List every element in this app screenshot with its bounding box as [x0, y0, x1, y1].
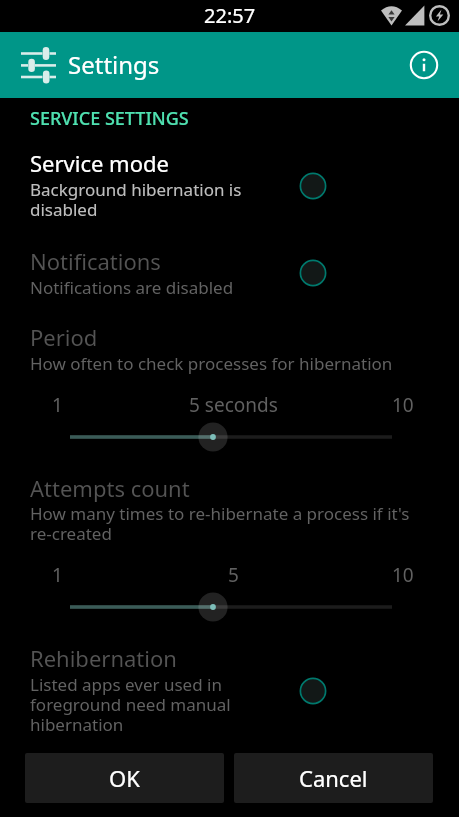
staticText: Rehibernation: [30, 643, 177, 673]
staticText: Background hibernation is disabled: [30, 178, 242, 221]
staticText: Listed apps ever used in foreground need…: [30, 673, 231, 736]
staticText: Attempts count: [30, 473, 190, 503]
staticText: OK: [109, 763, 140, 793]
staticText: 10: [392, 392, 414, 418]
button[interactable]: OK: [25, 753, 224, 803]
button[interactable]: Toggle: [295, 673, 331, 709]
button[interactable]: About: [404, 45, 444, 85]
staticText: Service mode: [30, 148, 169, 178]
staticText: How many times to re-hibernate a process…: [30, 502, 410, 545]
staticText: How often to check processes for hiberna…: [30, 352, 393, 375]
button[interactable]: Cancel: [234, 753, 433, 803]
button[interactable]: Toggle: [295, 255, 331, 291]
staticText: Period: [30, 322, 98, 352]
staticText: 5: [228, 562, 239, 588]
staticText: 1: [52, 562, 63, 588]
staticText: 5 seconds: [189, 392, 278, 418]
button[interactable]: Toggle: [295, 168, 331, 204]
staticText: 10: [392, 562, 414, 588]
staticText: SERVICE SETTINGS: [30, 106, 189, 131]
staticText: Notifications are disabled: [30, 276, 234, 299]
staticText: Cancel: [299, 763, 368, 793]
staticText: 1: [52, 392, 63, 418]
staticText: Settings: [68, 48, 160, 81]
staticText: Notifications: [30, 246, 161, 276]
button[interactable]: Slider: [56, 421, 406, 453]
button[interactable]: Slider: [56, 591, 406, 623]
staticText: 22:57: [204, 2, 256, 29]
